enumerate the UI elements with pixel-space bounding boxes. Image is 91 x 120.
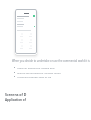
button[interactable] [17, 15, 35, 17]
staticText: Using an android for mobile desi [17, 66, 55, 69]
button[interactable] [17, 26, 35, 27]
button[interactable]: Device [20, 39, 23, 43]
button[interactable]: Device [20, 33, 23, 37]
button[interactable]: Device [29, 33, 32, 37]
staticText: When you decide to undertake or use the … [12, 59, 90, 63]
button[interactable]: Device [29, 39, 32, 43]
staticText: Mature the working for location mana [17, 71, 61, 74]
staticText: Application of [5, 98, 26, 102]
staticText: Screens of D [5, 92, 27, 97]
staticText: Associate business field of cre [17, 75, 52, 78]
button[interactable]: Device [20, 45, 23, 49]
button[interactable]: Device [29, 45, 32, 49]
